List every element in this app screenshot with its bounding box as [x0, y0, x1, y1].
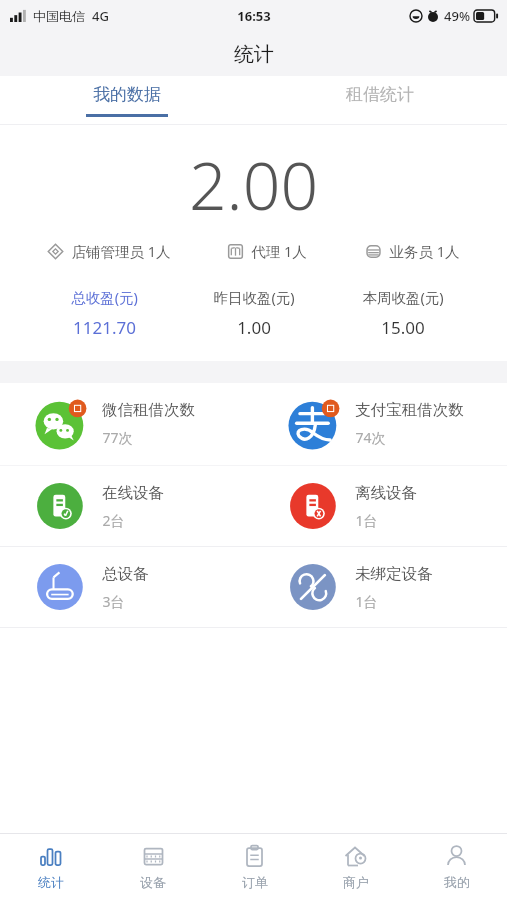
- button[interactable]: 代理 1人: [198, 241, 335, 261]
- button[interactable]: 设备: [102, 834, 204, 900]
- staticText: 商户: [343, 874, 369, 890]
- button[interactable]: 店铺管理员 1人: [18, 241, 198, 261]
- button[interactable]: 统计: [0, 834, 102, 900]
- staticText: 昨日收盈(元): [213, 287, 295, 307]
- other: 统计: [39, 844, 64, 869]
- staticText: 77次: [102, 428, 133, 447]
- button[interactable]: 支付宝租借次数: [253, 397, 507, 449]
- button[interactable]: 租借统计: [253, 76, 507, 124]
- staticText: 支付宝租借次数: [355, 400, 464, 420]
- staticText: 中国电信: [33, 8, 85, 24]
- staticText: 在线设备: [102, 483, 164, 503]
- button[interactable]: 总收盈(元): [30, 287, 179, 339]
- staticText: 业务员 1人: [389, 241, 460, 261]
- staticText: 租借统计: [346, 84, 414, 105]
- button[interactable]: 未绑定设备: [253, 561, 507, 613]
- button[interactable]: 商户: [305, 834, 406, 900]
- button[interactable]: 我的数据: [0, 76, 253, 124]
- staticText: 1台: [355, 511, 378, 530]
- staticText: 16:53: [237, 7, 271, 25]
- staticText: 1121.70: [73, 316, 136, 339]
- staticText: 我的数据: [93, 84, 161, 105]
- staticText: 总收盈(元): [71, 287, 138, 307]
- staticText: 统计: [38, 874, 64, 890]
- button[interactable]: 微信租借次数: [0, 397, 253, 449]
- staticText: 设备: [140, 874, 166, 890]
- staticText: 本周收盈(元): [362, 287, 444, 307]
- staticText: 2.00: [0, 139, 507, 229]
- other: 订单: [242, 844, 267, 869]
- button[interactable]: 在线设备: [0, 480, 253, 532]
- staticText: 代理 1人: [251, 241, 307, 261]
- staticText: 我的: [444, 874, 470, 890]
- staticText: 离线设备: [355, 483, 417, 503]
- staticText: 1.00: [237, 316, 271, 339]
- button[interactable]: 我的: [406, 834, 507, 900]
- staticText: 74次: [355, 428, 386, 447]
- staticText: 微信租借次数: [102, 400, 195, 420]
- staticText: 2台: [102, 511, 125, 530]
- staticText: 15.00: [381, 316, 425, 339]
- staticText: 49%: [444, 7, 470, 25]
- staticText: 未绑定设备: [355, 564, 433, 584]
- button[interactable]: 离线设备: [253, 480, 507, 532]
- other: 我的: [444, 844, 469, 869]
- button[interactable]: 本周收盈(元): [328, 287, 477, 339]
- staticText: 店铺管理员 1人: [71, 241, 171, 261]
- staticText: 订单: [242, 874, 268, 890]
- staticText: 3台: [102, 592, 125, 611]
- staticText: 总设备: [102, 564, 149, 584]
- button[interactable]: 昨日收盈(元): [179, 287, 328, 339]
- staticText: 4G: [92, 7, 109, 25]
- staticText: 1台: [355, 592, 378, 611]
- other: 商户: [343, 844, 368, 869]
- button[interactable]: 总设备: [0, 561, 253, 613]
- button[interactable]: 业务员 1人: [335, 241, 489, 261]
- other: 设备: [141, 844, 166, 869]
- staticText: 统计: [234, 42, 274, 67]
- button[interactable]: 订单: [204, 834, 305, 900]
